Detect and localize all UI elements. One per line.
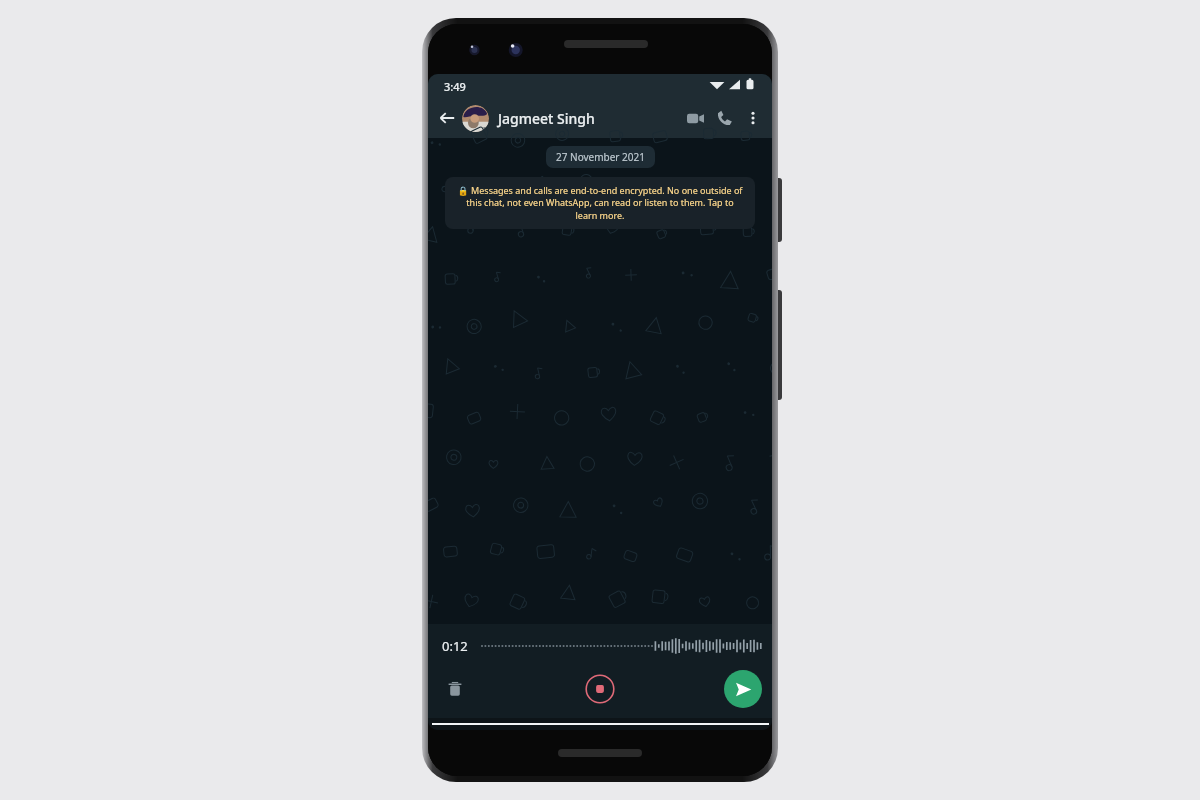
button[interactable]: Jagmeet Singh	[462, 105, 680, 132]
button[interactable]: Call	[710, 103, 740, 133]
button[interactable]: Stop recording	[583, 672, 617, 706]
staticText: 🔒 Messages and calls are end-to-end encr…	[455, 184, 745, 222]
button[interactable]: Send	[724, 670, 762, 708]
button[interactable]: More options	[740, 105, 766, 131]
staticText: 0:12	[442, 637, 468, 655]
button[interactable]: Video call	[680, 103, 710, 133]
button[interactable]: Back	[434, 105, 460, 131]
staticText: 27 November 2021	[556, 150, 645, 164]
button[interactable]: 27 November 2021	[546, 146, 655, 168]
staticText: Jagmeet Singh	[498, 109, 595, 128]
button[interactable]: Delete recording	[440, 674, 470, 704]
staticText: 3:49	[444, 79, 466, 94]
button[interactable]: 🔒 Messages and calls are end-to-end encr…	[445, 177, 755, 229]
